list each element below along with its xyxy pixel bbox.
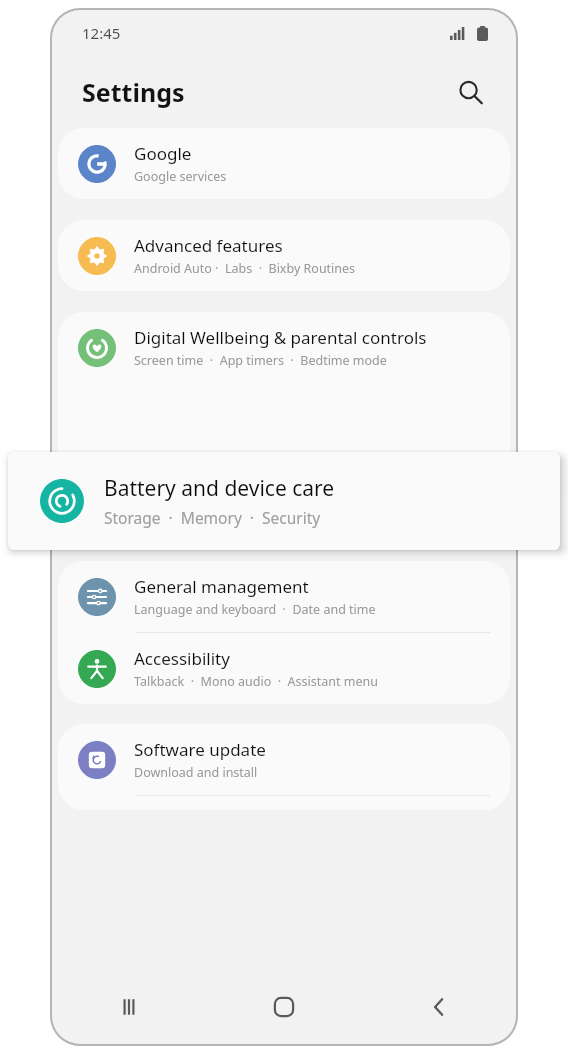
staticText: Google services (134, 168, 227, 185)
button[interactable]: Home (206, 970, 361, 1044)
button[interactable]: Apps (58, 469, 510, 540)
staticText: Screen time · App timers · Bedtime mode (134, 352, 387, 369)
staticText: Google (134, 142, 192, 165)
button[interactable]: Digital Wellbeing & parental controls (58, 312, 510, 383)
button[interactable]: Search (450, 72, 490, 112)
staticText: Talkback · Mono audio · Assistant menu (134, 673, 378, 690)
button[interactable]: Battery and device care (8, 452, 560, 550)
staticText: Default apps · App settings (134, 509, 299, 526)
staticText: Download and install (134, 764, 258, 781)
staticText: 12:45 (82, 23, 121, 43)
button[interactable]: Back (361, 970, 516, 1044)
staticText: Advanced features (134, 234, 283, 257)
button[interactable]: Accessibility (58, 633, 510, 704)
button[interactable]: General management (58, 561, 510, 632)
staticText: Digital Wellbeing & parental controls (134, 326, 427, 349)
staticText: Storage · Memory · Security (104, 507, 321, 528)
button[interactable]: Advanced features (58, 220, 510, 291)
staticText: Android Auto · Labs · Bixby Routines (134, 260, 356, 277)
staticText: Battery and device care (104, 474, 335, 503)
staticText: Accessibility (134, 647, 230, 670)
button[interactable]: Software update (58, 724, 510, 795)
staticText: Apps (134, 483, 174, 506)
staticText: Software update (134, 738, 266, 761)
staticText: Settings (82, 75, 185, 109)
staticText: General management (134, 575, 309, 598)
button[interactable]: Recent apps (52, 970, 206, 1044)
button[interactable]: Google (58, 128, 510, 199)
staticText: Language and keyboard · Date and time (134, 601, 376, 618)
